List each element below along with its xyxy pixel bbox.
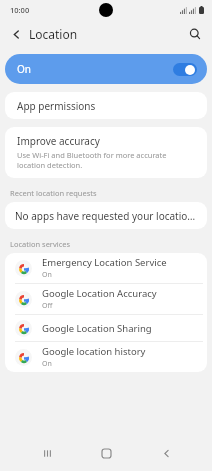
button[interactable]: Home (93, 440, 119, 466)
button[interactable]: No apps have requested your location r.. (5, 202, 207, 229)
button[interactable]: Back (6, 24, 26, 44)
button[interactable]: Emergency Location Service (5, 253, 207, 283)
button[interactable]: Search (185, 24, 205, 44)
staticText: Google Location Sharing (42, 322, 152, 335)
staticText: On (42, 359, 52, 369)
staticText: Location (29, 26, 78, 42)
staticText: On (42, 270, 52, 280)
staticText: Off (42, 301, 53, 311)
staticText: 10:00 (10, 5, 30, 15)
button[interactable]: On (5, 54, 207, 84)
staticText: No apps have requested your location r.. (15, 209, 197, 223)
staticText: Use Wi-Fi and Bluetooth for more accurat… (17, 150, 195, 170)
staticText: App permissions (17, 99, 96, 113)
staticText: On (17, 62, 31, 76)
button[interactable]: Google Location Accuracy (5, 284, 207, 314)
staticText: Google location history (42, 345, 146, 358)
button[interactable]: Back (153, 440, 179, 466)
staticText: Google Location Accuracy (42, 287, 157, 300)
button[interactable]: Google Location Sharing (5, 315, 207, 341)
staticText: Location services (10, 239, 71, 249)
staticText: Improve accuracy (17, 134, 100, 148)
button[interactable]: Google location history (5, 342, 207, 372)
button[interactable]: Improve accuracy (5, 127, 207, 178)
staticText: Emergency Location Service (42, 256, 167, 269)
button[interactable]: App permissions (5, 92, 207, 119)
button[interactable]: Recent apps (34, 440, 60, 466)
staticText: Recent location requests (10, 188, 97, 198)
